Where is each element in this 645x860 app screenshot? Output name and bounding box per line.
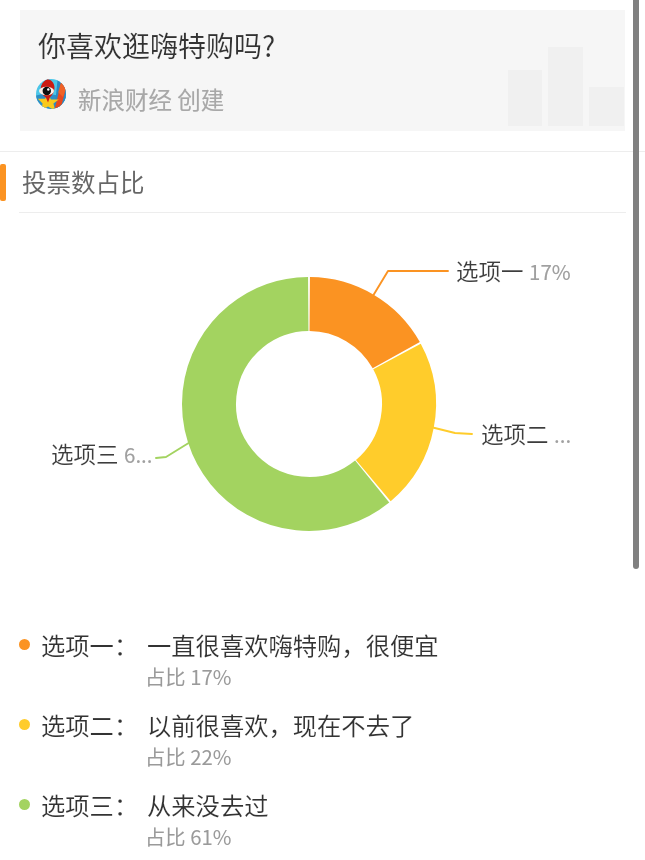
button[interactable]: 你喜欢逛嗨特购吗? <box>20 10 625 131</box>
staticText: 占比 61% <box>145 821 232 850</box>
button[interactable]: 选项一： <box>0 621 645 701</box>
staticText: 17% <box>529 256 571 286</box>
staticText: 占比 22% <box>145 741 232 770</box>
staticText: 6... <box>124 439 153 469</box>
button[interactable]: 投票数占比 <box>0 152 645 212</box>
staticText: ... <box>554 419 572 449</box>
staticText: 新浪财经 创建 <box>78 82 225 116</box>
staticText: 选项一： <box>41 627 139 662</box>
staticText: 占比 17% <box>145 661 232 690</box>
staticText: 以前很喜欢，现在不去了 <box>147 707 415 742</box>
button[interactable]: 选项二： <box>0 701 645 781</box>
staticText: 一直很喜欢嗨特购，很便宜 <box>147 627 439 662</box>
staticText: 你喜欢逛嗨特购吗? <box>38 25 276 66</box>
staticText: 投票数占比 <box>22 164 145 199</box>
staticText: 选项三 <box>51 437 119 470</box>
staticText: 选项二 <box>481 417 549 450</box>
staticText: 选项一 <box>456 254 524 287</box>
other: 新浪财经 头像 <box>36 79 66 109</box>
button[interactable]: 选项三： <box>0 781 645 860</box>
staticText: 从来没去过 <box>147 787 269 822</box>
staticText: 选项三： <box>41 787 139 822</box>
staticText: 选项二： <box>41 707 139 742</box>
